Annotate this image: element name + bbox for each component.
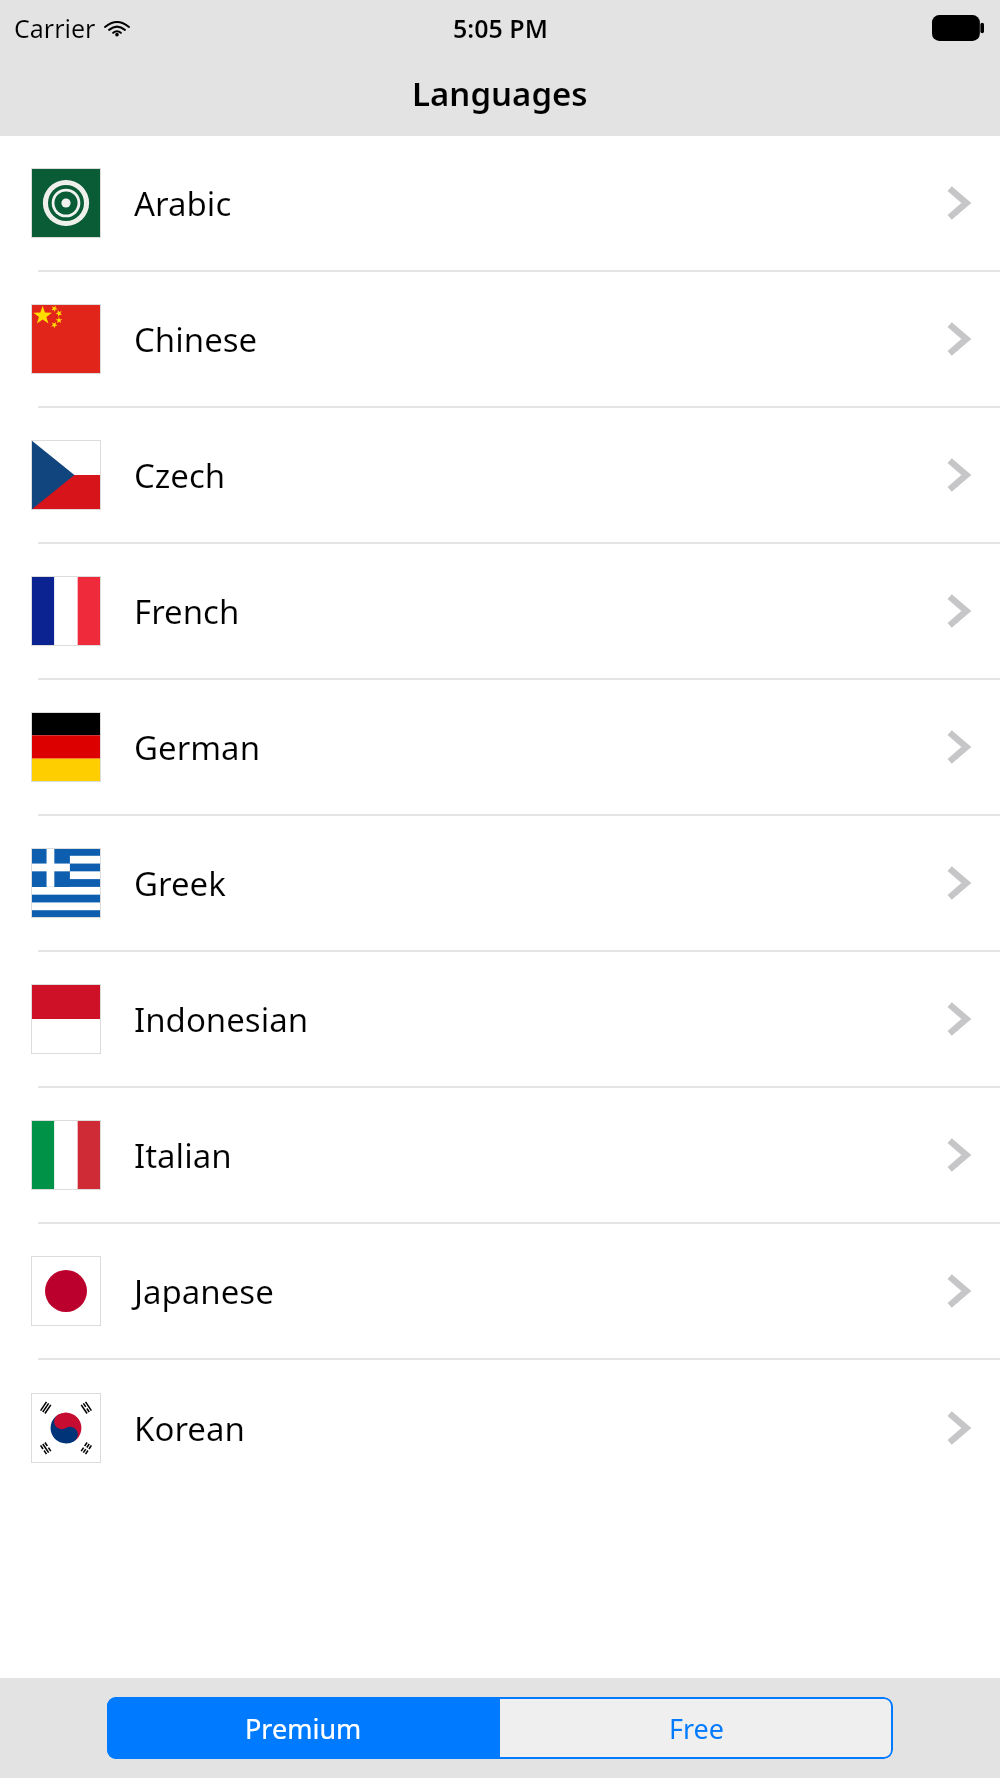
button[interactable]: Korean bbox=[0, 1360, 1000, 1496]
button[interactable]: Premium bbox=[107, 1697, 500, 1759]
button[interactable]: Indonesian bbox=[0, 952, 1000, 1088]
button[interactable]: Czech bbox=[0, 408, 1000, 544]
staticText: 5:05 PM bbox=[453, 11, 548, 45]
button[interactable]: Free bbox=[500, 1697, 893, 1759]
staticText: Chinese bbox=[134, 317, 947, 362]
staticText: Indonesian bbox=[134, 997, 947, 1042]
staticText: Premium bbox=[245, 1710, 362, 1747]
staticText: Italian bbox=[134, 1133, 947, 1178]
button[interactable]: Japanese bbox=[0, 1224, 1000, 1360]
staticText: Carrier bbox=[14, 11, 96, 45]
button[interactable]: Chinese bbox=[0, 272, 1000, 408]
staticText: Languages bbox=[412, 71, 588, 116]
staticText: French bbox=[134, 589, 947, 634]
staticText: Greek bbox=[134, 861, 947, 906]
button[interactable]: French bbox=[0, 544, 1000, 680]
button[interactable]: Italian bbox=[0, 1088, 1000, 1224]
staticText: German bbox=[134, 725, 947, 770]
button[interactable]: German bbox=[0, 680, 1000, 816]
staticText: Japanese bbox=[134, 1269, 947, 1314]
staticText: Free bbox=[669, 1710, 725, 1747]
staticText: Arabic bbox=[134, 181, 947, 226]
button[interactable]: Greek bbox=[0, 816, 1000, 952]
button[interactable]: Arabic bbox=[0, 136, 1000, 272]
staticText: Czech bbox=[134, 453, 947, 498]
staticText: Korean bbox=[134, 1406, 947, 1451]
